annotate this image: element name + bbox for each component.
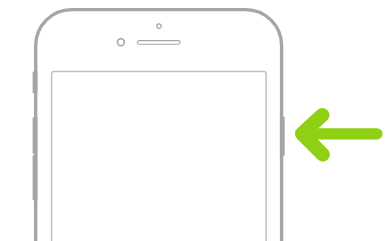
button[interactable]: Volume up button bbox=[33, 118, 40, 154]
button[interactable]: Ring/Silent switch bbox=[33, 72, 40, 94]
button[interactable]: Side button bbox=[280, 117, 287, 156]
button[interactable]: Volume down button bbox=[33, 156, 40, 201]
